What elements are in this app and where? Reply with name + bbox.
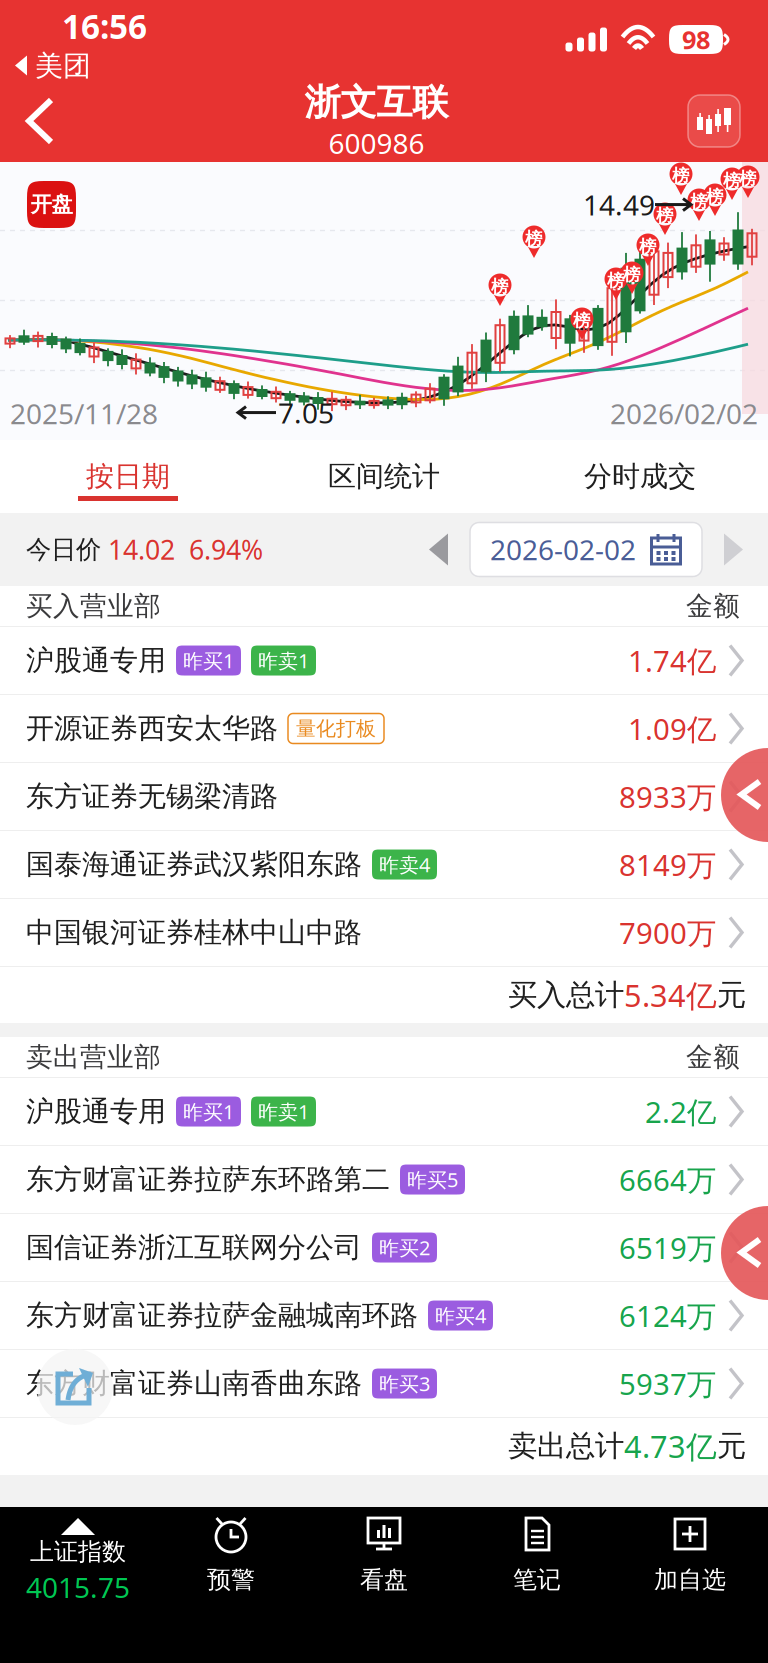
- staticText: 7.05: [278, 394, 334, 431]
- staticText: 区间统计: [328, 459, 440, 494]
- staticText: 6664万: [619, 1160, 716, 1199]
- staticText: 昨买4: [435, 1302, 486, 1329]
- staticText: 昨卖1: [258, 647, 309, 674]
- staticText: 榜: [723, 170, 740, 191]
- staticText: 昨买1: [183, 1098, 234, 1125]
- button[interactable]: 国泰海通证券武汉紫阳东路: [0, 831, 768, 899]
- staticText: 榜: [573, 310, 590, 331]
- staticText: 金额: [686, 590, 740, 622]
- staticText: 14.49: [583, 186, 655, 223]
- staticText: 6519万: [619, 1228, 716, 1267]
- staticText: 卖出营业部: [26, 1041, 161, 1073]
- staticText: 美团: [35, 49, 91, 83]
- staticText: 元: [717, 977, 746, 1013]
- staticText: 榜: [690, 191, 707, 212]
- staticText: 开盘: [30, 191, 72, 218]
- button[interactable]: 返回: [0, 84, 81, 158]
- button[interactable]: 开源证券西安太华路: [0, 695, 768, 763]
- staticText: 沪股通专用: [26, 643, 166, 678]
- staticText: 榜: [739, 168, 756, 189]
- staticText: 昨买3: [379, 1370, 430, 1397]
- button[interactable]: 前一日: [408, 513, 470, 585]
- staticText: 浙文互联: [304, 80, 448, 124]
- button[interactable]: 2026-02-02: [470, 522, 702, 576]
- staticText: 昨卖1: [258, 1098, 309, 1125]
- staticText: 榜: [639, 236, 656, 257]
- staticText: 4015.75: [26, 1568, 130, 1606]
- staticText: 5937万: [619, 1364, 716, 1403]
- button[interactable]: K线图: [678, 84, 768, 158]
- staticText: 分时成交: [584, 459, 696, 494]
- staticText: 笔记: [513, 1565, 561, 1594]
- staticText: 按日期: [86, 459, 170, 494]
- button[interactable]: 东方证券无锡梁清路: [0, 763, 768, 831]
- button[interactable]: 沪股通专用: [0, 627, 768, 695]
- staticText: 昨买5: [407, 1166, 458, 1193]
- staticText: 1.09亿: [628, 709, 716, 748]
- staticText: 今日价: [26, 534, 101, 565]
- staticText: 元: [717, 1428, 746, 1464]
- staticText: 6124万: [619, 1296, 716, 1335]
- staticText: 榜: [706, 186, 723, 207]
- staticText: 加自选: [654, 1565, 726, 1594]
- button[interactable]: 分时成交: [512, 440, 768, 513]
- button[interactable]: 东方财富证券拉萨金融城南环路: [0, 1282, 768, 1350]
- staticText: 东方财富证券拉萨金融城南环路: [26, 1298, 418, 1333]
- staticText: 98: [682, 23, 710, 56]
- button[interactable]: 按日期: [0, 440, 256, 513]
- staticText: 2026/02/02: [610, 395, 758, 432]
- staticText: 4.73亿: [624, 1426, 717, 1466]
- button[interactable]: 加自选: [613, 1507, 766, 1663]
- button[interactable]: 沪股通专用: [0, 1078, 768, 1146]
- staticText: 6.94%: [175, 532, 263, 567]
- staticText: 金额: [686, 1041, 740, 1073]
- staticText: 7900万: [619, 913, 716, 952]
- button[interactable]: 美团: [0, 51, 220, 81]
- button[interactable]: 分享: [37, 1349, 113, 1425]
- staticText: 2025/11/28: [10, 395, 158, 432]
- staticText: 昨卖4: [379, 851, 430, 878]
- button[interactable]: 东方财富证券山南香曲东路: [0, 1350, 768, 1418]
- staticText: 国信证券浙江互联网分公司: [26, 1230, 362, 1265]
- staticText: 量化打板: [296, 716, 376, 741]
- staticText: 8149万: [619, 845, 716, 884]
- staticText: 榜: [525, 228, 542, 249]
- staticText: 榜: [672, 165, 689, 186]
- staticText: 14.02: [101, 532, 175, 567]
- staticText: 东方证券无锡梁清路: [26, 779, 278, 814]
- staticText: 榜: [491, 276, 508, 297]
- staticText: 榜: [607, 270, 624, 291]
- button[interactable]: 上证指数: [1, 1507, 154, 1663]
- button[interactable]: 展开: [721, 748, 768, 842]
- button[interactable]: 后一日: [702, 513, 764, 585]
- staticText: 5.34亿: [624, 975, 717, 1015]
- button[interactable]: 东方财富证券拉萨东环路第二: [0, 1146, 768, 1214]
- staticText: 东方财富证券山南香曲东路: [26, 1366, 362, 1401]
- staticText: 上证指数: [30, 1537, 126, 1566]
- staticText: 开源证券西安太华路: [26, 711, 278, 746]
- staticText: 买入营业部: [26, 590, 161, 622]
- staticText: 600986: [328, 124, 424, 162]
- staticText: 看盘: [360, 1565, 408, 1594]
- button[interactable]: 看盘: [307, 1507, 460, 1663]
- staticText: 东方财富证券拉萨东环路第二: [26, 1162, 390, 1197]
- staticText: 1.74亿: [628, 641, 716, 680]
- staticText: 2.2亿: [645, 1092, 716, 1131]
- button[interactable]: 展开: [721, 1206, 768, 1300]
- staticText: 预警: [207, 1565, 255, 1594]
- button[interactable]: 笔记: [460, 1507, 613, 1663]
- staticText: 买入总计: [508, 977, 624, 1013]
- button[interactable]: 国信证券浙江互联网分公司: [0, 1214, 768, 1282]
- staticText: 2026-02-02: [490, 531, 636, 568]
- staticText: 沪股通专用: [26, 1094, 166, 1129]
- staticText: 8933万: [619, 777, 716, 816]
- staticText: 昨买1: [183, 647, 234, 674]
- button[interactable]: 中国银河证券桂林中山中路: [0, 899, 768, 967]
- staticText: 卖出总计: [508, 1428, 624, 1464]
- staticText: 昨买2: [379, 1234, 430, 1261]
- staticText: 榜: [656, 205, 673, 226]
- button[interactable]: 区间统计: [256, 440, 512, 513]
- button[interactable]: 预警: [154, 1507, 307, 1663]
- staticText: 中国银河证券桂林中山中路: [26, 915, 362, 950]
- staticText: 榜: [623, 264, 640, 285]
